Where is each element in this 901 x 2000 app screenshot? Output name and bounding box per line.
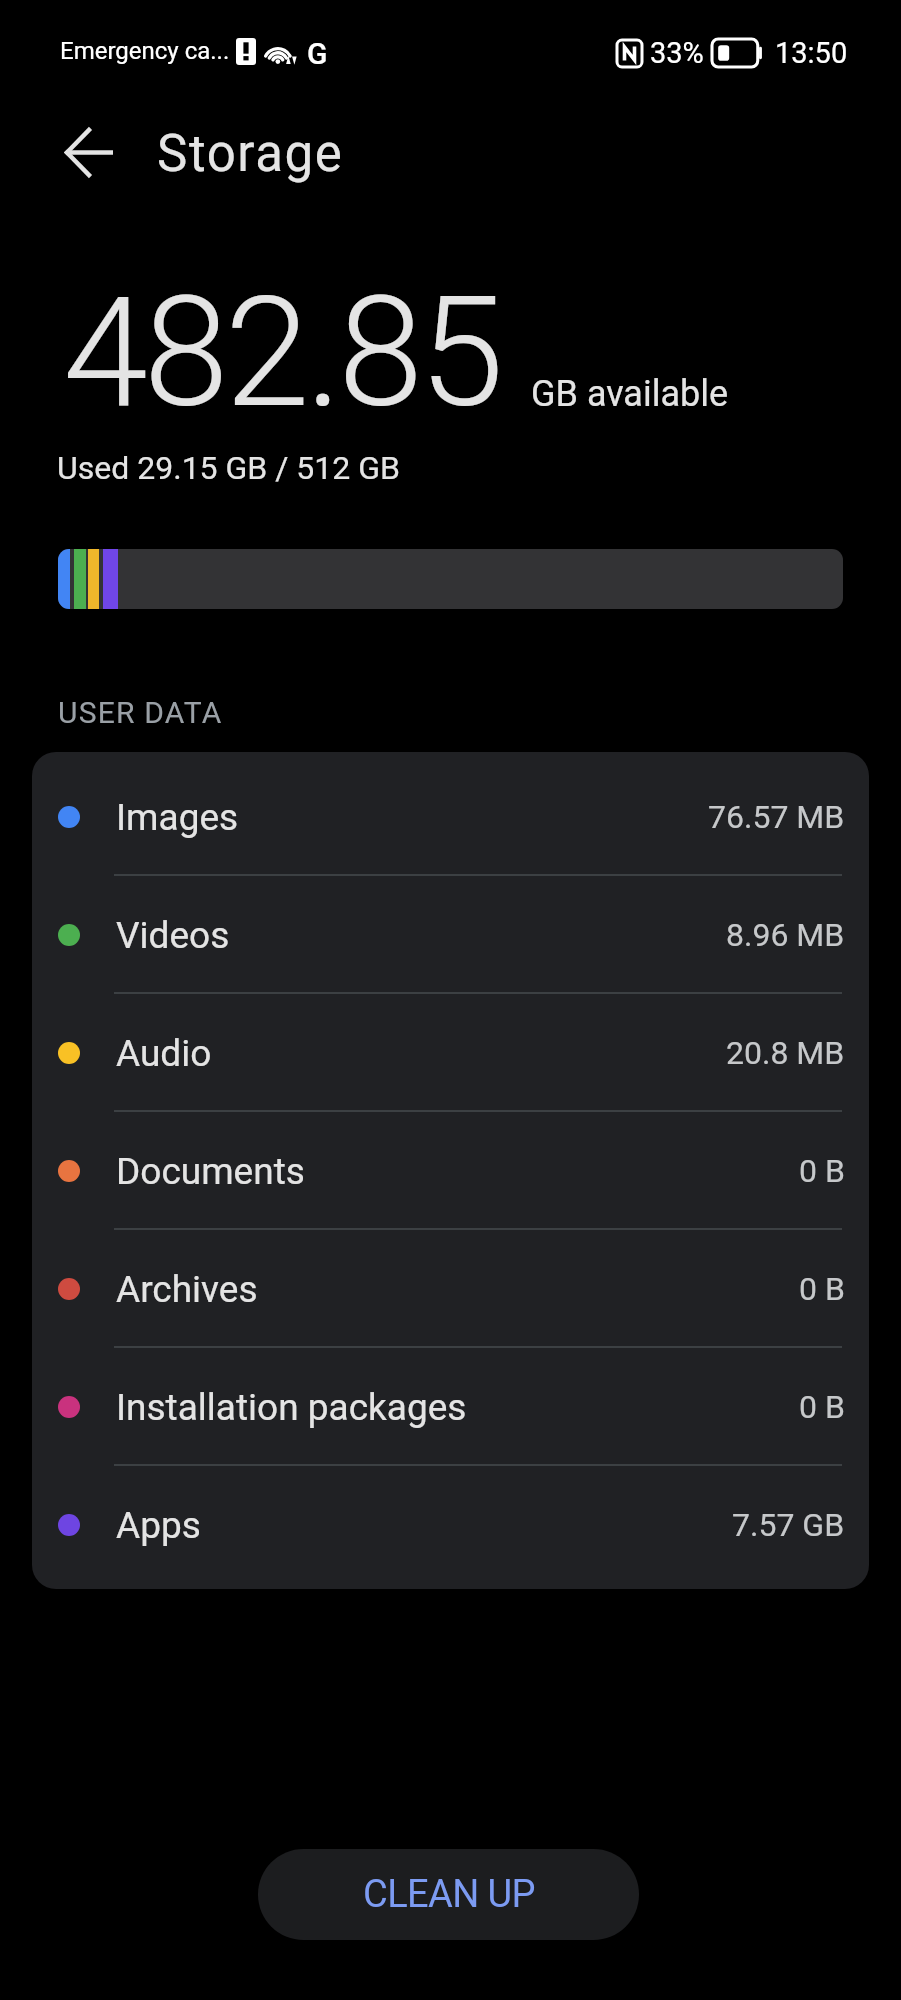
staticText: 0 B xyxy=(799,1270,845,1308)
staticText: 0 B xyxy=(799,1152,845,1190)
staticText: Images xyxy=(116,796,239,839)
staticText: 76.57 MB xyxy=(708,798,845,836)
staticText: 33% xyxy=(650,36,704,70)
staticText: Apps xyxy=(116,1504,201,1547)
staticText: CLEAN UP xyxy=(363,1872,535,1917)
staticText: G xyxy=(307,36,328,66)
staticText: Used 29.15 GB / 512 GB xyxy=(57,449,400,487)
button[interactable]: Videos xyxy=(32,876,869,992)
staticText: Documents xyxy=(116,1150,305,1193)
staticText: 20.8 MB xyxy=(726,1034,845,1072)
staticText: Audio xyxy=(116,1032,212,1075)
button[interactable]: Audio xyxy=(32,994,869,1110)
staticText: 7.57 GB xyxy=(732,1506,845,1544)
staticText: USER DATA xyxy=(58,695,223,730)
button[interactable]: Archives xyxy=(32,1230,869,1346)
staticText: Emergency ca... xyxy=(60,37,230,65)
staticText: Storage xyxy=(157,124,344,184)
button[interactable]: Documents xyxy=(32,1112,869,1228)
staticText: 13:50 xyxy=(775,36,848,70)
button[interactable]: Images xyxy=(32,758,869,874)
button[interactable]: Apps xyxy=(32,1466,869,1582)
button[interactable]: Installation packages xyxy=(32,1348,869,1464)
staticText: Videos xyxy=(116,914,230,957)
button[interactable]: CLEAN UP xyxy=(258,1849,639,1940)
staticText: Archives xyxy=(116,1268,258,1311)
staticText: 8.96 MB xyxy=(726,916,845,954)
button[interactable]: Back xyxy=(47,110,131,194)
staticText: 482.85 xyxy=(63,263,500,442)
staticText: 0 B xyxy=(799,1388,845,1426)
staticText: Installation packages xyxy=(116,1386,467,1429)
staticText: GB available xyxy=(531,373,729,415)
